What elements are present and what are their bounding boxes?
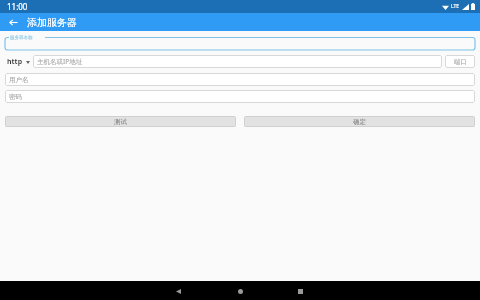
button[interactable]: 用户名 bbox=[5, 73, 475, 86]
staticText: http bbox=[7, 57, 23, 67]
button[interactable]: 测试 bbox=[5, 116, 236, 127]
staticText: 测试 bbox=[114, 118, 127, 126]
button[interactable]: Back bbox=[170, 283, 186, 299]
button[interactable]: 主机名或IP地址 bbox=[33, 55, 442, 68]
button[interactable]: http bbox=[5, 57, 33, 67]
button[interactable]: 服务器名称 bbox=[5, 35, 475, 50]
button[interactable]: 确定 bbox=[244, 116, 475, 127]
staticText: 11:00 bbox=[7, 1, 28, 12]
staticText: LTE bbox=[451, 3, 460, 10]
staticText: 用户名 bbox=[9, 76, 29, 84]
staticText: 主机名或IP地址 bbox=[37, 57, 83, 66]
button[interactable]: Home bbox=[232, 283, 248, 299]
button[interactable]: 端口 bbox=[445, 55, 475, 68]
button[interactable]: Recent apps bbox=[292, 283, 308, 299]
button[interactable]: 密码 bbox=[5, 90, 475, 103]
staticText: 添加服务器 bbox=[27, 16, 77, 29]
staticText: 端口 bbox=[454, 58, 467, 66]
staticText: 确定 bbox=[353, 118, 366, 126]
staticText: 密码 bbox=[9, 93, 22, 101]
button[interactable]: Back bbox=[5, 14, 21, 30]
staticText: 服务器名称 bbox=[10, 35, 33, 41]
